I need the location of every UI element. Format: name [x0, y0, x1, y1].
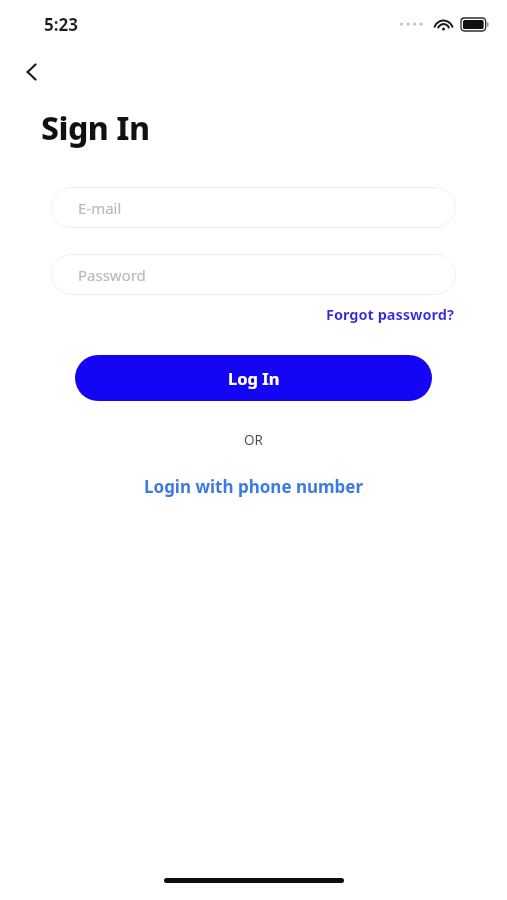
staticText: 5:23 — [44, 13, 78, 36]
staticText: E-mail — [78, 198, 122, 218]
button[interactable]: Log In — [75, 355, 432, 401]
staticText: Password — [78, 265, 146, 285]
button[interactable]: Forgot password? — [324, 302, 456, 326]
button[interactable]: Password — [51, 254, 456, 295]
staticText: Log In — [228, 367, 280, 389]
button[interactable]: E-mail — [51, 187, 456, 228]
staticText: Login with phone number — [144, 475, 364, 498]
staticText: Sign In — [41, 106, 150, 150]
button[interactable]: Back — [8, 48, 56, 96]
staticText: OR — [0, 431, 507, 449]
button[interactable]: Login with phone number — [138, 472, 370, 501]
staticText: Forgot password? — [326, 304, 454, 324]
